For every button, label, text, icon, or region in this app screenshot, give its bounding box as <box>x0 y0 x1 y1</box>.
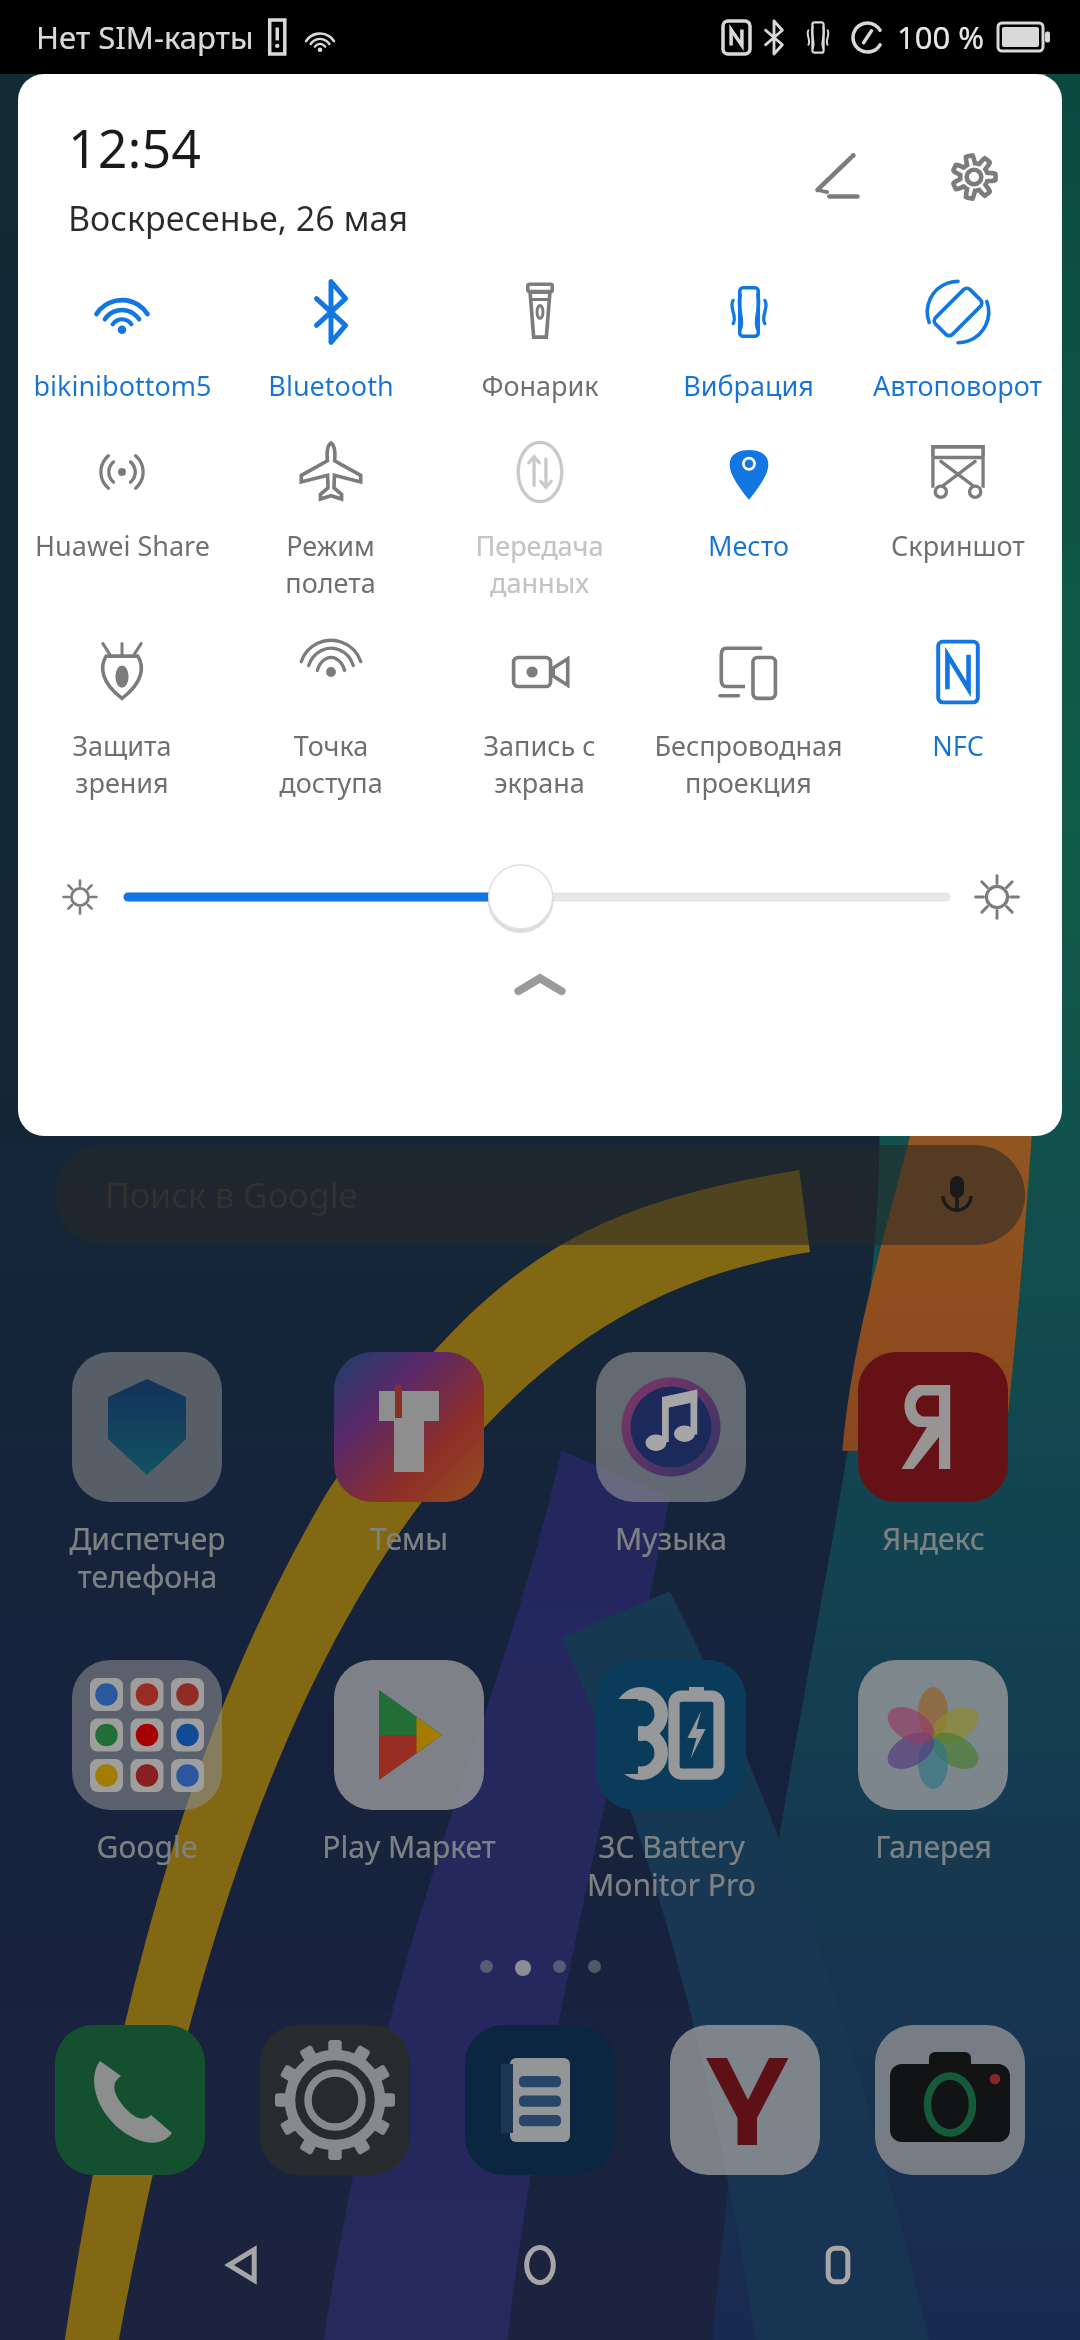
staticText: Беспроводная проекция <box>654 727 843 801</box>
button[interactable]: Скриншот <box>853 431 1062 631</box>
button[interactable]: Recents <box>783 2210 893 2320</box>
staticText: Яндекс <box>882 1518 985 1559</box>
staticText: Запись с экрана <box>483 727 596 801</box>
button[interactable]: Место <box>644 431 853 631</box>
button[interactable]: Play Маркет <box>294 1660 524 1867</box>
button[interactable]: bikinibottom5 <box>18 271 226 431</box>
staticText: Защита зрения <box>72 727 172 801</box>
staticText: Передача данных <box>475 527 604 601</box>
staticText: Фонарик <box>481 367 599 404</box>
staticText: 3C Battery Monitor Pro <box>587 1826 756 1905</box>
staticText: Музыка <box>615 1518 727 1559</box>
staticText: Галерея <box>875 1826 992 1867</box>
button[interactable]: Беспроводная проекция <box>644 631 853 831</box>
staticText: Google <box>96 1826 198 1867</box>
button[interactable]: Режим полета <box>226 431 435 631</box>
button[interactable]: Collapse <box>18 955 1062 1015</box>
button[interactable]: Huawei Share <box>18 431 226 631</box>
staticText: Режим полета <box>285 527 376 601</box>
button[interactable]: CAMERA <box>875 2025 1025 2175</box>
staticText: Темы <box>370 1518 448 1559</box>
button[interactable]: SETTINGS <box>260 2025 410 2175</box>
button[interactable]: NFC <box>853 631 1062 831</box>
button[interactable]: Home <box>485 2210 595 2320</box>
button[interactable]: DIALER <box>55 2025 205 2175</box>
button[interactable]: Bluetooth <box>226 271 435 431</box>
button[interactable]: Вибрация <box>644 271 853 431</box>
button[interactable]: 3C Battery Monitor Pro <box>556 1660 786 1905</box>
button[interactable]: Защита зрения <box>18 631 226 831</box>
staticText: Диспетчер телефона <box>69 1518 226 1597</box>
staticText: Play Маркет <box>322 1826 496 1867</box>
button[interactable]: SMS <box>465 2025 615 2175</box>
button[interactable]: Фонарик <box>435 271 644 431</box>
staticText: Нет SIM-карты <box>36 16 254 58</box>
staticText: 100 % <box>897 16 985 58</box>
button[interactable]: Запись с экрана <box>435 631 644 831</box>
button[interactable]: YA_BROWSER <box>670 2025 820 2175</box>
staticText: Автоповорот <box>873 367 1042 404</box>
button[interactable]: Музыка <box>556 1352 786 1559</box>
button[interactable]: Точка доступа <box>226 631 435 831</box>
staticText: Скриншот <box>891 527 1025 564</box>
button[interactable]: Темы <box>294 1352 524 1559</box>
staticText: bikinibottom5 <box>33 367 212 404</box>
button[interactable]: Google <box>32 1660 262 1867</box>
button[interactable]: Back <box>188 2210 298 2320</box>
button[interactable]: Передача данных <box>435 431 644 631</box>
button[interactable]: Поиск в Google <box>55 1145 1025 1245</box>
button[interactable]: Settings <box>926 129 1022 225</box>
staticText: Место <box>708 527 789 564</box>
staticText: NFC <box>932 727 984 764</box>
staticText: Поиск в Google <box>105 1172 358 1218</box>
staticText: Вибрация <box>683 367 814 404</box>
button[interactable]: Диспетчер телефона <box>32 1352 262 1597</box>
staticText: Bluetooth <box>268 367 394 404</box>
staticText: Huawei Share <box>35 527 210 564</box>
staticText: 12:54 <box>68 112 201 183</box>
button[interactable]: Brightness <box>128 852 946 942</box>
button[interactable]: Галерея <box>818 1660 1048 1867</box>
button[interactable]: Edit <box>790 129 886 225</box>
staticText: Воскресенье, 26 мая <box>68 195 409 241</box>
button[interactable]: Автоповорот <box>853 271 1062 431</box>
staticText: Точка доступа <box>279 727 383 801</box>
button[interactable]: Яндекс <box>818 1352 1048 1559</box>
